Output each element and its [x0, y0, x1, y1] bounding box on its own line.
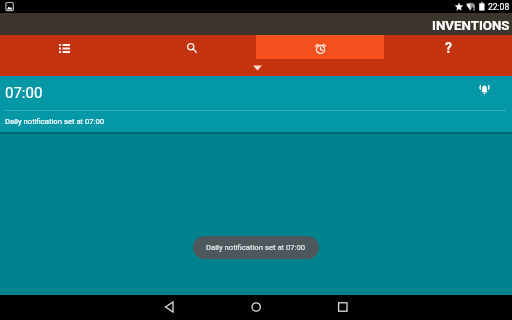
button[interactable]: Back [150, 295, 188, 320]
button[interactable]: Home [237, 295, 275, 320]
staticText: INVENTIONS [432, 18, 510, 34]
button[interactable]: Menu [0, 35, 128, 59]
staticText: ? [445, 40, 452, 56]
button[interactable]: Alarm [256, 35, 384, 59]
button[interactable]: Toggle alarm [474, 79, 494, 99]
staticText: 07:00 [5, 84, 43, 102]
staticText: Daily notification set at 07:00 [206, 243, 306, 252]
button[interactable]: Recent apps [323, 295, 361, 320]
button[interactable]: Help [384, 35, 512, 59]
staticText: 22:08 [488, 2, 510, 12]
button[interactable]: Search [128, 35, 256, 59]
button[interactable]: 07:00 [0, 76, 512, 132]
staticText: Daily notification set at 07:00 [5, 117, 105, 126]
